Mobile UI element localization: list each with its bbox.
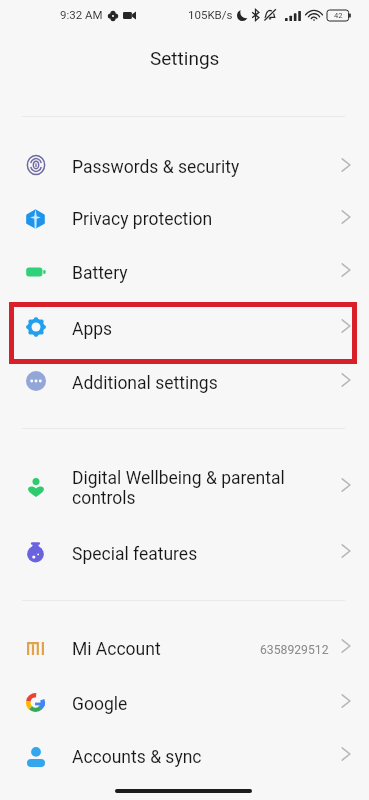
button[interactable]: Accounts & sync xyxy=(0,730,369,784)
staticText: Accounts & sync xyxy=(72,747,202,768)
button[interactable]: Digital Wellbeing & parental controls xyxy=(0,458,369,518)
button[interactable]: Privacy protection xyxy=(0,193,369,246)
button[interactable]: Google xyxy=(0,677,369,731)
staticText: 42 xyxy=(334,11,343,20)
staticText: Mi Account xyxy=(72,639,161,660)
button[interactable]: Passwords & security xyxy=(0,141,369,194)
staticText: Passwords & security xyxy=(72,157,240,178)
button[interactable]: Mi Account xyxy=(0,622,369,676)
staticText: Digital Wellbeing & parental controls xyxy=(72,468,290,508)
staticText: 105KB/s xyxy=(188,8,233,21)
staticText: Google xyxy=(72,694,128,715)
staticText: 9:32 AM xyxy=(60,8,103,21)
staticText: Privacy protection xyxy=(72,209,213,230)
staticText: Additional settings xyxy=(72,373,218,394)
staticText: Special features xyxy=(72,544,198,565)
staticText: 6358929512 xyxy=(260,643,329,657)
button[interactable]: Special features xyxy=(0,527,369,581)
button[interactable]: Additional settings xyxy=(0,356,369,410)
staticText: Battery xyxy=(72,263,128,284)
staticText: Apps xyxy=(72,319,113,340)
staticText: Settings xyxy=(150,47,220,69)
button[interactable]: Apps xyxy=(0,302,369,356)
button[interactable]: Battery xyxy=(0,246,369,300)
